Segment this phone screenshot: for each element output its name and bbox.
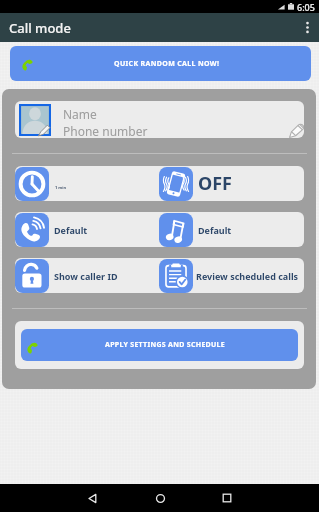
staticText: Call mode <box>9 19 71 37</box>
button[interactable]: More options <box>295 13 319 42</box>
staticText: 1 min <box>55 185 67 190</box>
button[interactable]: OFF <box>159 166 304 201</box>
staticText: QUICK RANDOM CALL NOW! <box>114 59 220 69</box>
staticText: Show caller ID <box>54 270 118 282</box>
button[interactable]: QUICK RANDOM CALL NOW! <box>10 46 311 81</box>
button[interactable]: APPLY SETTINGS AND SCHEDULE <box>21 329 298 361</box>
staticText: Default <box>54 224 88 236</box>
button[interactable]: Name <box>15 101 304 138</box>
button[interactable]: Recents <box>212 484 242 512</box>
staticText: Default <box>198 224 232 236</box>
button[interactable]: Show caller ID <box>15 258 159 293</box>
staticText: Review scheduled calls <box>196 270 299 282</box>
button[interactable]: Default <box>15 212 159 247</box>
staticText: OFF <box>198 171 233 196</box>
staticText: APPLY SETTINGS AND SCHEDULE <box>105 340 226 350</box>
staticText: 6:05 <box>297 1 315 13</box>
button[interactable]: Review scheduled calls <box>159 258 304 293</box>
staticText: Name <box>63 106 97 122</box>
button[interactable]: Home <box>145 484 175 512</box>
button[interactable]: 1 min <box>15 166 159 201</box>
staticText: Phone number <box>63 123 148 138</box>
button[interactable]: Default <box>159 212 304 247</box>
button[interactable]: Back <box>77 484 107 512</box>
